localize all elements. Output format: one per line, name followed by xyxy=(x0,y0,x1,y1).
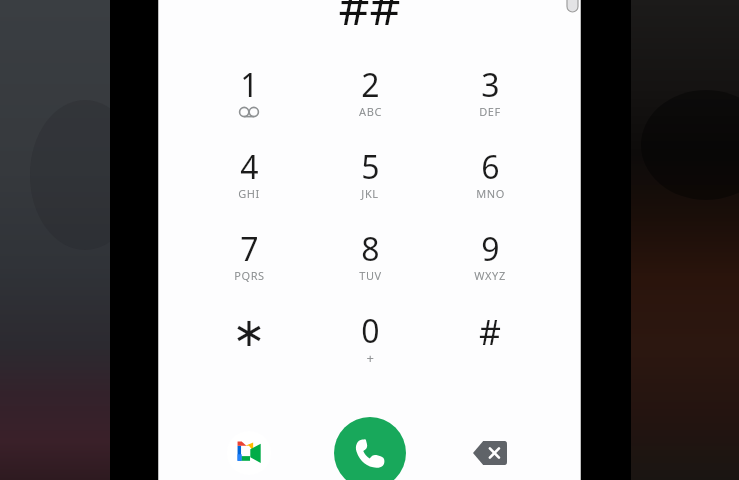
button[interactable]: Call xyxy=(334,417,406,480)
staticText: 4 xyxy=(240,145,259,187)
button[interactable]: 5 xyxy=(318,145,422,219)
button[interactable]: 9 xyxy=(438,227,542,301)
staticText: 8 xyxy=(361,227,380,269)
staticText: 3 xyxy=(481,63,500,105)
staticText: ABC xyxy=(359,104,382,119)
button[interactable]: 4 xyxy=(197,145,301,219)
staticText: # xyxy=(479,309,501,351)
button[interactable]: 1 xyxy=(197,63,301,137)
staticText: MNO xyxy=(476,186,505,201)
button[interactable]: ∗ xyxy=(197,309,301,383)
staticText: + xyxy=(366,349,375,365)
staticText: 0 xyxy=(361,309,380,351)
staticText: ∗ xyxy=(232,309,266,351)
staticText: WXYZ xyxy=(474,268,506,283)
staticText: GHI xyxy=(238,186,260,201)
staticText: ## xyxy=(338,0,401,38)
staticText: 5 xyxy=(361,145,380,187)
button[interactable]: Backspace xyxy=(466,433,514,473)
staticText: 9 xyxy=(481,227,500,269)
staticText: JKL xyxy=(361,186,379,201)
staticText: 1 xyxy=(240,63,259,105)
button[interactable]: Video call with Google Meet xyxy=(227,431,271,475)
button[interactable]: 7 xyxy=(197,227,301,301)
button[interactable]: 3 xyxy=(438,63,542,137)
button[interactable]: 8 xyxy=(318,227,422,301)
button[interactable]: ## xyxy=(158,0,581,38)
staticText: TUV xyxy=(359,268,382,283)
staticText: 6 xyxy=(481,145,500,187)
staticText: DEF xyxy=(479,104,501,119)
button[interactable]: 6 xyxy=(438,145,542,219)
button[interactable]: # xyxy=(438,309,542,383)
staticText: PQRS xyxy=(234,268,265,283)
button[interactable]: 2 xyxy=(318,63,422,137)
staticText: 7 xyxy=(240,227,259,269)
button[interactable]: 0 xyxy=(318,309,422,383)
button[interactable] xyxy=(0,0,739,480)
staticText: 2 xyxy=(361,63,380,105)
